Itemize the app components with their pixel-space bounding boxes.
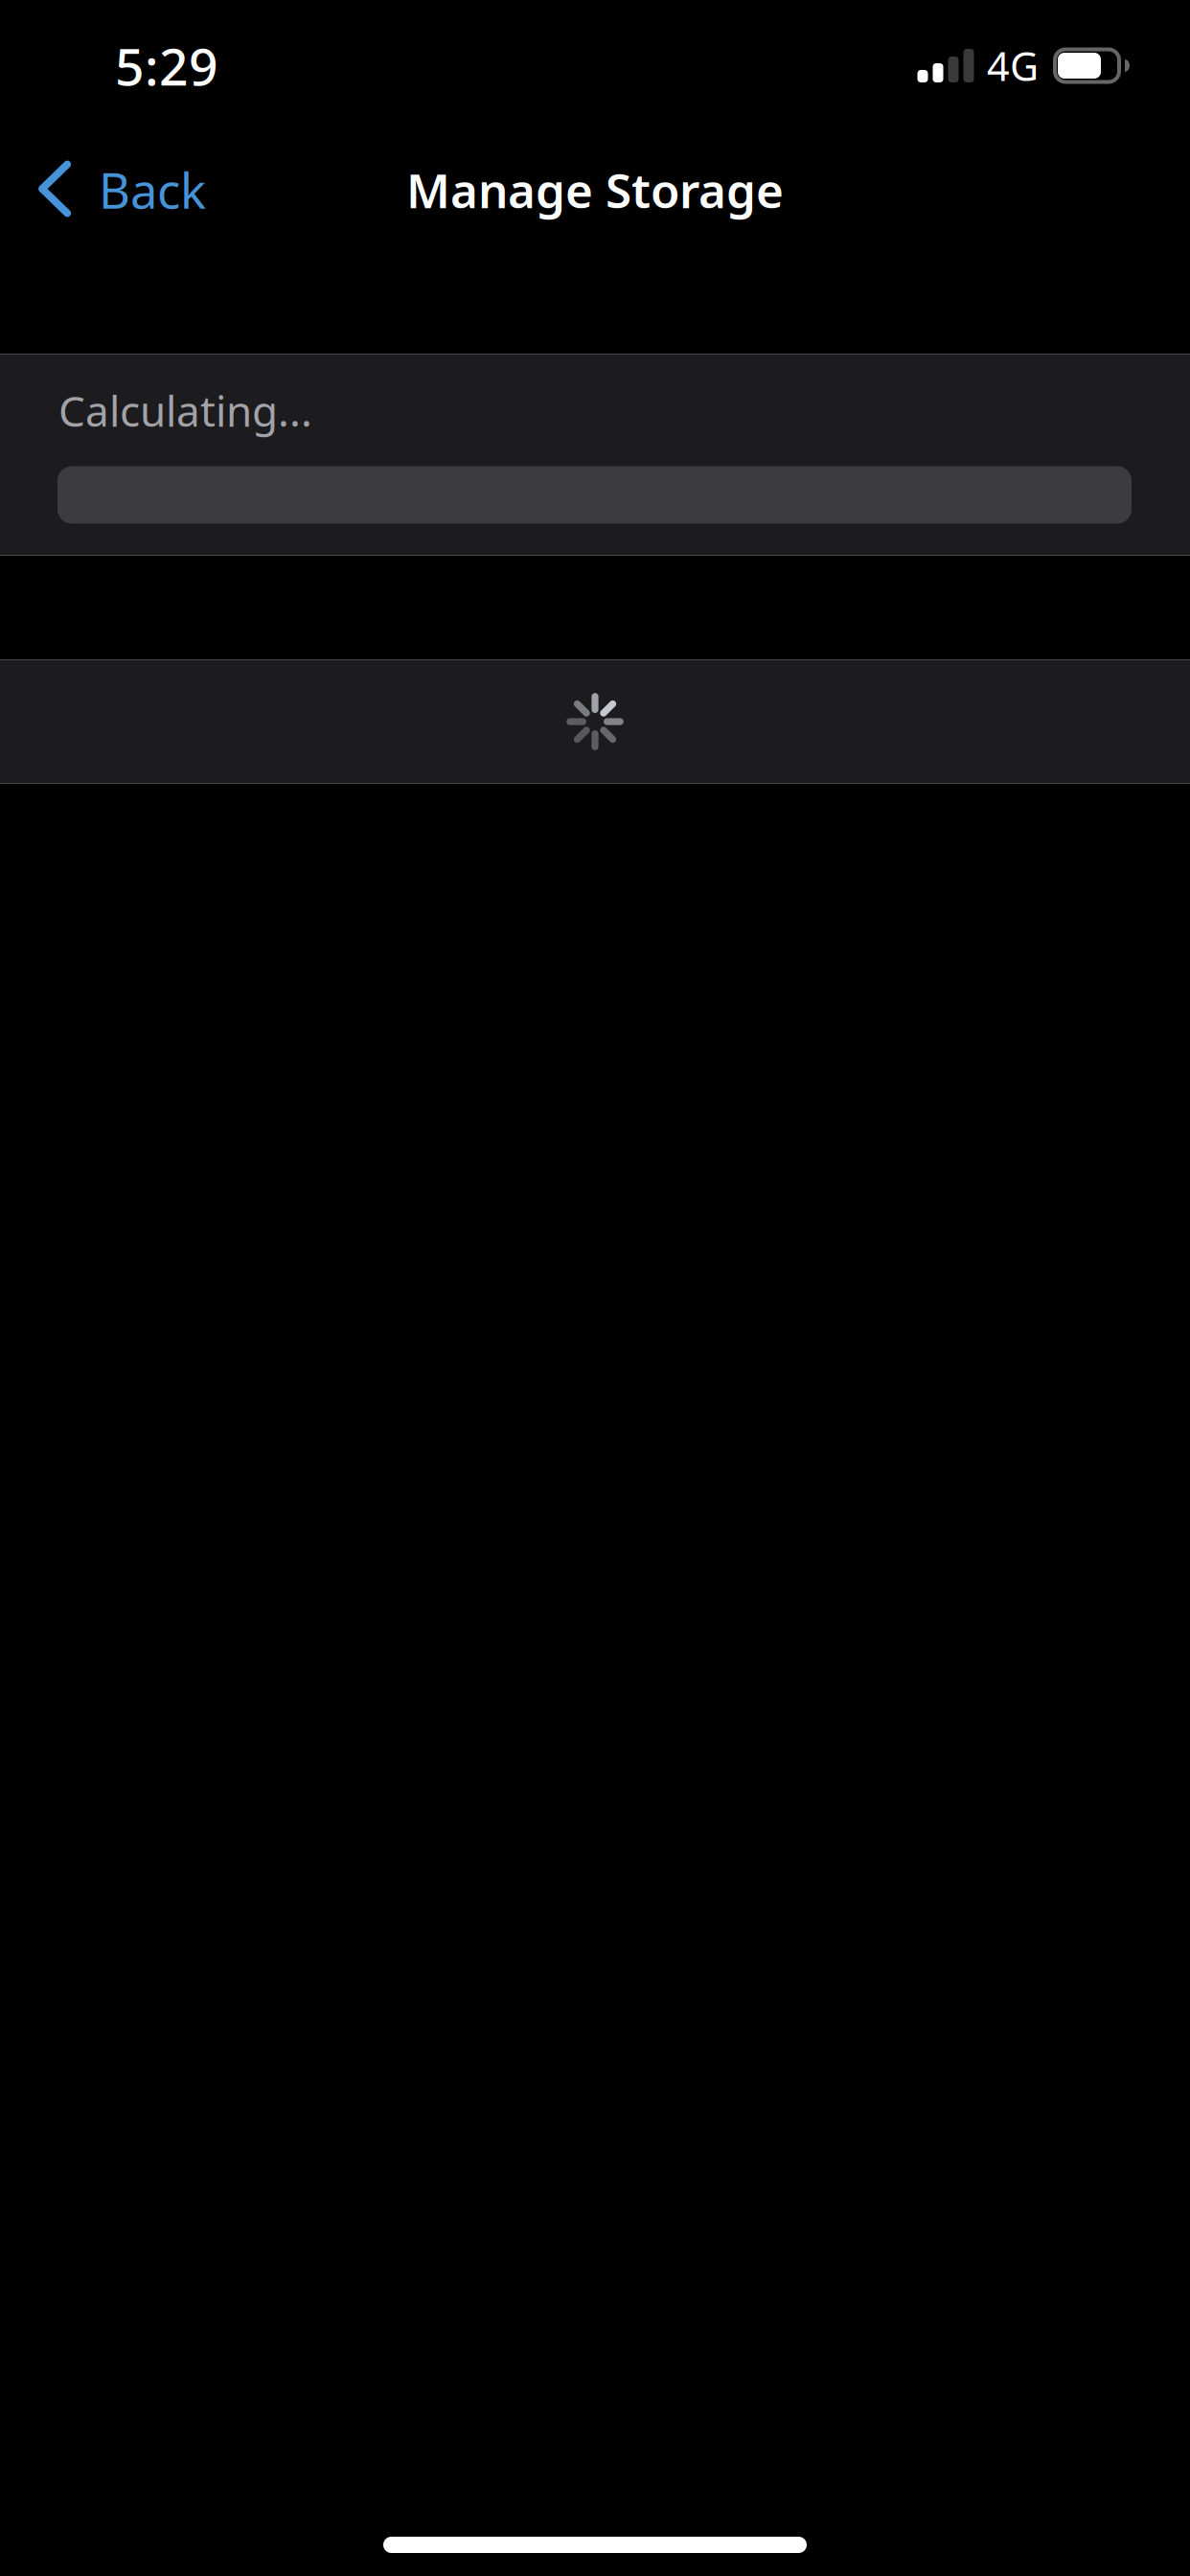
staticText: 5:29	[115, 32, 218, 100]
staticText: Manage Storage	[406, 158, 784, 221]
button[interactable]: Back	[0, 126, 231, 253]
staticText: 4G	[987, 39, 1039, 92]
staticText: Back	[99, 158, 206, 222]
staticText: Calculating...	[58, 382, 312, 438]
